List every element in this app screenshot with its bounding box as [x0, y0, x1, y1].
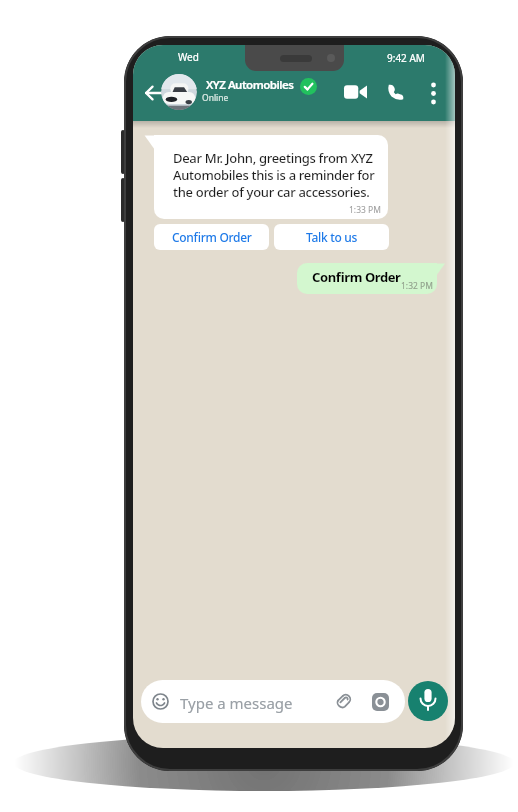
staticText: XYZ Automobiles — [206, 77, 294, 93]
button[interactable] — [408, 681, 448, 721]
button[interactable] — [387, 83, 405, 101]
staticText: Wed — [178, 50, 199, 64]
staticText: Confirm Order — [312, 268, 401, 286]
button[interactable] — [372, 693, 389, 711]
button[interactable]: Talk to us — [274, 224, 389, 250]
staticText: the order of your car accessories. — [173, 183, 370, 201]
button[interactable] — [141, 680, 405, 723]
staticText: 1:32 PM — [401, 280, 433, 292]
button[interactable]: Confirm Order — [154, 224, 269, 250]
staticText: Automobiles this is a reminder for — [173, 166, 375, 184]
staticText: Type a message — [180, 693, 293, 713]
button[interactable] — [428, 82, 439, 105]
staticText: 1:33 PM — [349, 204, 381, 216]
staticText: Online — [202, 92, 229, 104]
staticText: Talk to us — [306, 229, 358, 245]
button[interactable] — [335, 692, 353, 710]
staticText: Dear Mr. John, greetings from XYZ — [173, 149, 373, 167]
button[interactable] — [344, 84, 367, 100]
staticText: 9:42 AM — [387, 51, 425, 65]
button[interactable] — [152, 693, 169, 710]
staticText: Confirm Order — [172, 229, 252, 245]
button[interactable] — [161, 74, 197, 110]
button[interactable] — [145, 85, 163, 101]
